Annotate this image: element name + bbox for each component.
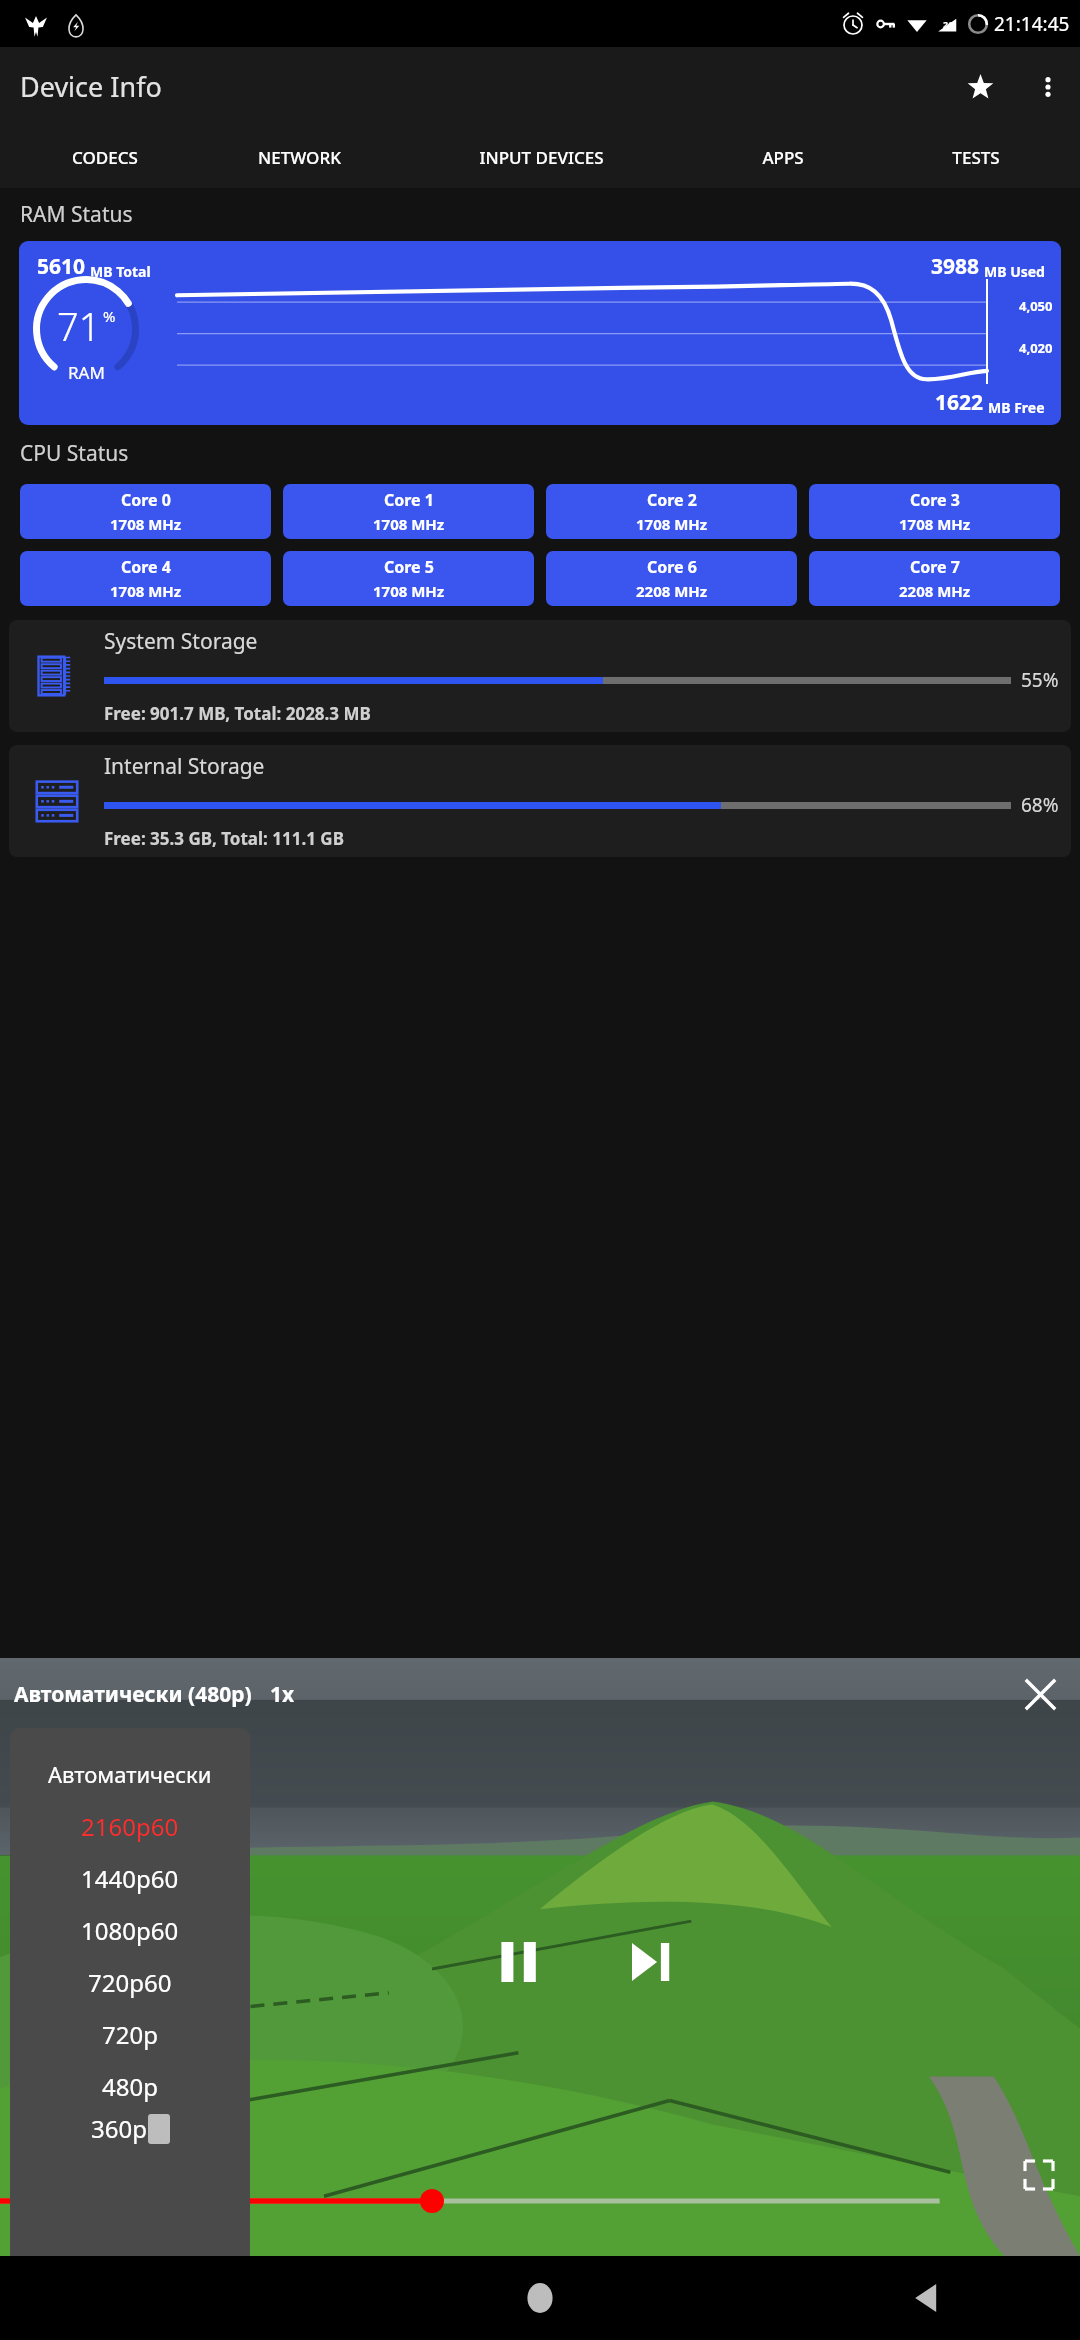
staticText: Автоматически (480p) [14,1680,252,1709]
staticText: Free: 901.7 MB, Total: 2028.3 MB [104,702,371,725]
staticText: 1440p60 [81,1862,179,1895]
button[interactable]: Back [898,2271,952,2325]
staticText: 1080p60 [81,1914,179,1947]
button[interactable]: Favorite [956,63,1004,111]
staticText: 1708 MHz [373,514,445,534]
staticText: Core 4 [121,556,171,578]
staticText: 26 [943,18,954,30]
staticText: Core 3 [910,489,960,511]
staticText: Internal Storage [104,752,265,781]
staticText: Core 0 [121,489,171,511]
staticText: MB Total [90,262,151,281]
staticText: 1x [270,1680,295,1709]
button[interactable]: 720p [10,2008,250,2060]
staticText: 2160p60 [81,1810,179,1843]
staticText: 71 [57,300,101,352]
staticText: INPUT DEVICES [479,146,604,169]
button[interactable]: CODECS [8,126,202,188]
staticText: MB Free [988,398,1045,417]
staticText: Core 7 [910,556,960,578]
staticText: RAM Status [20,200,133,229]
staticText: TESTS [952,146,1000,169]
staticText: 1708 MHz [110,514,182,534]
staticText: Core 2 [647,489,697,511]
button[interactable]: Core 4 [20,551,271,606]
button[interactable]: TESTS [879,126,1072,188]
button[interactable]: More options [1024,63,1072,111]
button[interactable]: INPUT DEVICES [396,126,686,188]
staticText: % [103,306,116,326]
button[interactable]: Core 0 [20,484,271,539]
button[interactable]: Home [513,2271,567,2325]
button[interactable]: Fullscreen [1016,2152,1062,2198]
staticText: NETWORK [258,146,341,169]
button[interactable]: Core 5 [283,551,534,606]
button[interactable]: Core 1 [283,484,534,539]
button[interactable]: 480p [10,2060,250,2112]
button[interactable]: 5610 [19,241,1061,425]
staticText: Core 6 [647,556,697,578]
staticText: Core 1 [384,489,434,511]
staticText: 3988 [931,252,980,281]
staticText: CPU Status [20,439,129,468]
button[interactable]: Core 3 [809,484,1060,539]
staticText: 4,020 [1019,339,1053,357]
button[interactable]: System Storage [9,620,1071,732]
staticText: 2208 MHz [636,581,708,601]
button[interactable]: Автоматически [10,1748,250,1800]
button[interactable]: 1440p60 [10,1852,250,1904]
staticText: 720p [102,2018,158,2051]
staticText: 1708 MHz [899,514,971,534]
staticText: 1622 [935,388,984,417]
staticText: Автоматически [48,1759,212,1789]
staticText: 480p [102,2070,158,2103]
button[interactable]: Core 6 [546,551,797,606]
button[interactable]: Core 2 [546,484,797,539]
staticText: 21:14:45 [994,11,1070,37]
button[interactable]: 2160p60 [10,1800,250,1852]
button[interactable]: Pause [481,1924,557,2000]
button[interactable]: 1x [270,1674,295,1715]
staticText: 360p [91,2112,147,2145]
staticText: APPS [762,146,804,169]
staticText: 2208 MHz [899,581,971,601]
button[interactable]: 1080p60 [10,1904,250,1956]
staticText: 1708 MHz [636,514,708,534]
staticText: 1708 MHz [110,581,182,601]
staticText: 720p60 [88,1966,172,1999]
staticText: 1708 MHz [373,581,445,601]
button[interactable]: Автоматически (480p) [14,1674,252,1715]
staticText: 55% [1021,667,1059,693]
staticText: Device Info [20,68,162,105]
button[interactable]: Close [1018,1672,1062,1716]
button[interactable]: APPS [686,126,879,188]
button[interactable]: Internal Storage [9,745,1071,857]
button[interactable]: NETWORK [202,126,396,188]
staticText: System Storage [104,627,258,656]
staticText: MB Used [984,262,1045,281]
staticText: 5610 [37,252,86,281]
staticText: Core 5 [384,556,434,578]
button[interactable]: Next [613,1924,689,2000]
staticText: 4,050 [1019,297,1053,315]
button[interactable]: Core 7 [809,551,1060,606]
staticText: Free: 35.3 GB, Total: 111.1 GB [104,827,344,850]
staticText: 68% [1021,792,1059,818]
staticText: RAM [68,361,105,384]
button[interactable]: 720p60 [10,1956,250,2008]
staticText: CODECS [72,146,138,169]
